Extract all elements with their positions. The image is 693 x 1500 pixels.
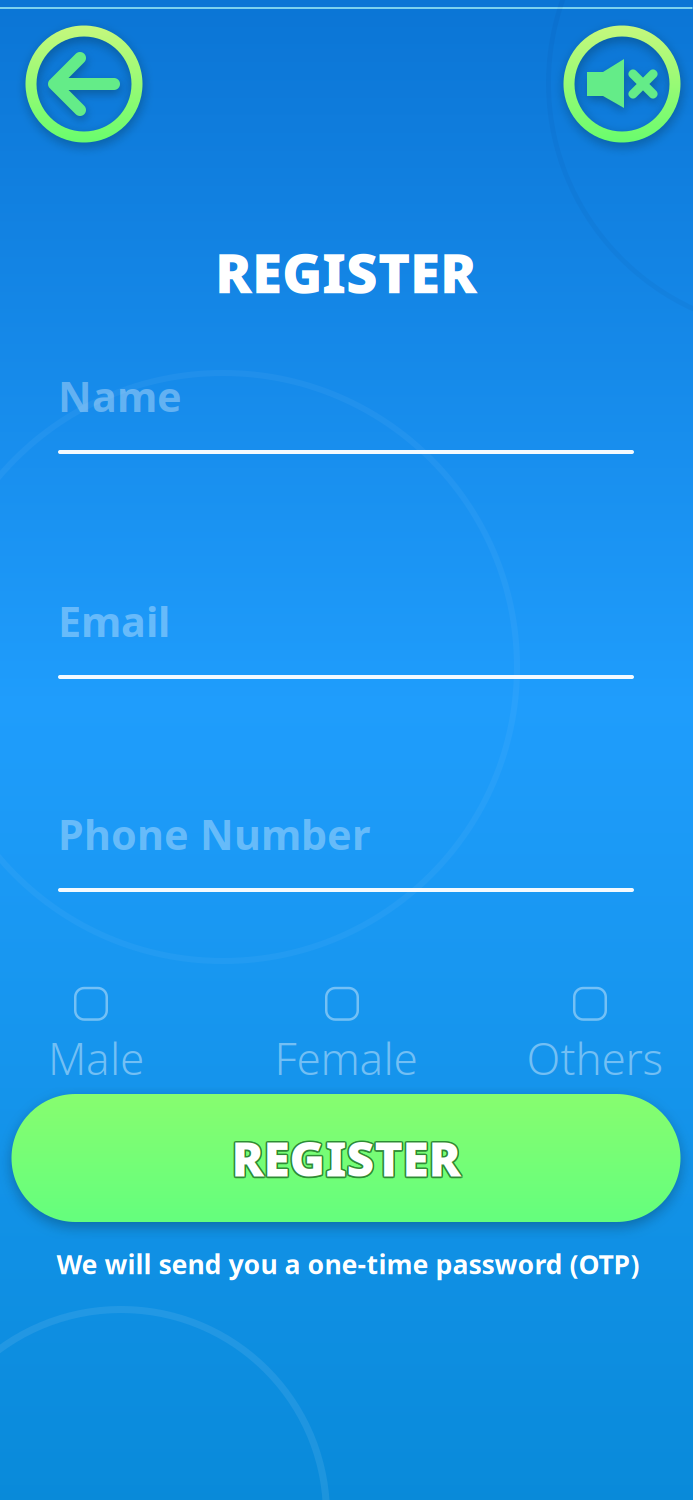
staticText: REGISTER: [230, 1127, 459, 1191]
button[interactable]: REGISTER: [11, 1094, 680, 1222]
button[interactable]: Others: [495, 991, 693, 1083]
staticText: REGISTER: [230, 1125, 459, 1189]
staticText: REGISTER: [231, 1124, 460, 1188]
staticText: REGISTER: [233, 1126, 462, 1190]
staticText: We will send you a one-time password (OT…: [56, 1246, 639, 1282]
staticText: REGISTER: [233, 1125, 462, 1189]
staticText: Phone Number: [58, 807, 370, 861]
staticText: Others: [526, 1029, 663, 1087]
button[interactable]: Mute: [563, 25, 680, 142]
button[interactable]: Female: [246, 991, 446, 1083]
staticText: Male: [48, 1029, 144, 1087]
staticText: REGISTER: [215, 236, 477, 308]
staticText: Email: [58, 594, 170, 648]
staticText: REGISTER: [233, 1127, 462, 1191]
button[interactable]: Male: [0, 991, 196, 1083]
staticText: Female: [274, 1029, 417, 1087]
staticText: REGISTER: [230, 1126, 459, 1190]
staticText: Name: [58, 369, 182, 423]
staticText: REGISTER: [231, 1126, 460, 1190]
button[interactable]: Back: [25, 25, 142, 142]
staticText: REGISTER: [231, 1128, 460, 1191]
